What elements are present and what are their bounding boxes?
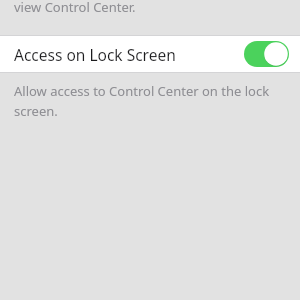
button[interactable]: Access on Lock Screen [0,35,300,73]
staticText: Allow access to Control Center on the lo… [14,82,270,120]
button[interactable]: Access on Lock Screen toggle [244,41,289,67]
staticText: view Control Center. [14,0,136,16]
staticText: Access on Lock Screen [14,44,176,65]
